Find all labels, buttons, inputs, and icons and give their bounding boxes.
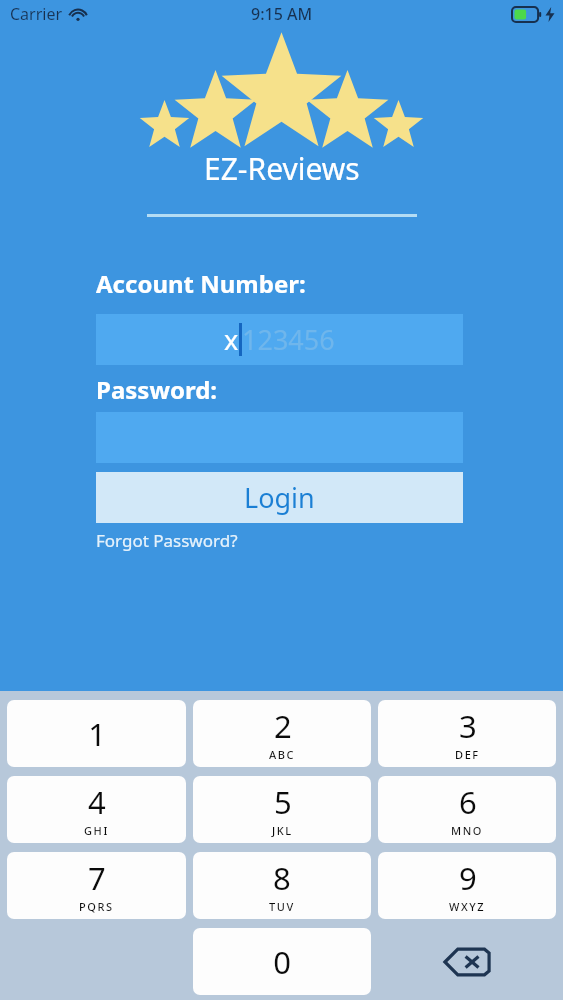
staticText: DEF bbox=[455, 747, 480, 762]
staticText: 6 bbox=[459, 781, 477, 823]
staticText: x bbox=[224, 321, 239, 358]
button[interactable]: Delete bbox=[378, 928, 556, 995]
staticText: 9:15 AM bbox=[251, 3, 313, 25]
staticText: Carrier bbox=[10, 3, 63, 25]
staticText: MNO bbox=[451, 823, 484, 838]
staticText: 5 bbox=[274, 781, 292, 823]
button[interactable]: Login bbox=[96, 472, 463, 523]
staticText: Password: bbox=[96, 373, 218, 406]
staticText: ABC bbox=[269, 747, 296, 762]
staticText: JKL bbox=[272, 823, 293, 838]
staticText: 7 bbox=[88, 857, 106, 899]
button[interactable]: 3 bbox=[378, 700, 556, 767]
staticText: 1 bbox=[88, 713, 106, 755]
button[interactable]: 6 bbox=[378, 776, 556, 843]
staticText: 0 bbox=[273, 941, 291, 983]
button[interactable]: 2 bbox=[193, 700, 371, 767]
staticText: PQRS bbox=[79, 899, 114, 914]
staticText: 2 bbox=[274, 705, 292, 747]
staticText: TUV bbox=[269, 899, 295, 914]
button[interactable]: 7 bbox=[7, 852, 186, 919]
staticText: 8 bbox=[273, 857, 291, 899]
staticText: WXYZ bbox=[449, 899, 486, 914]
staticText: 4 bbox=[88, 781, 106, 823]
staticText: 9 bbox=[459, 857, 477, 899]
staticText: Account Number: bbox=[96, 267, 306, 300]
staticText: 123456 bbox=[242, 321, 335, 358]
button[interactable]: 9 bbox=[378, 852, 556, 919]
button[interactable]: 4 bbox=[7, 776, 186, 843]
staticText: EZ-Reviews bbox=[204, 148, 360, 189]
button[interactable]: 8 bbox=[193, 852, 371, 919]
button[interactable]: Forgot Password? bbox=[96, 529, 238, 552]
button[interactable]: 5 bbox=[193, 776, 371, 843]
button[interactable]: 0 bbox=[193, 928, 371, 995]
staticText: Login bbox=[244, 479, 315, 516]
staticText: GHI bbox=[84, 823, 109, 838]
staticText: Forgot Password? bbox=[96, 529, 238, 552]
staticText: 3 bbox=[459, 705, 477, 747]
button[interactable]: x bbox=[96, 314, 463, 365]
button[interactable]: 1 bbox=[7, 700, 186, 767]
